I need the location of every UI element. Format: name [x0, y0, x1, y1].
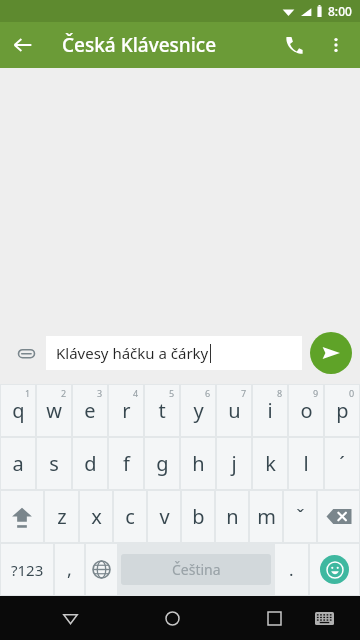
staticText: g	[156, 450, 169, 477]
staticText: ˇ	[296, 503, 305, 530]
button[interactable]: Recents	[252, 596, 296, 640]
button[interactable]: d	[73, 438, 107, 489]
staticText: 6	[205, 387, 211, 399]
staticText: z	[57, 503, 67, 530]
button[interactable]: ˇ	[284, 491, 316, 542]
staticText: e	[84, 397, 96, 424]
staticText: p	[336, 397, 349, 424]
button[interactable]: .	[275, 544, 308, 595]
button[interactable]: r	[109, 385, 143, 436]
button[interactable]: i	[253, 385, 287, 436]
button[interactable]: f	[109, 438, 143, 489]
button[interactable]: e	[73, 385, 107, 436]
staticText: 3	[97, 387, 103, 399]
button[interactable]: Call	[272, 23, 316, 67]
button[interactable]: z	[45, 491, 78, 542]
button[interactable]: Home	[150, 596, 194, 640]
staticText: 0	[349, 387, 355, 399]
button[interactable]: ?123	[1, 544, 53, 595]
button[interactable]: b	[182, 491, 214, 542]
button[interactable]: Klávesy háčku a čárky	[46, 336, 302, 370]
button[interactable]: Keyboard	[304, 598, 344, 638]
staticText: y	[193, 397, 204, 424]
button[interactable]: a	[1, 438, 35, 489]
staticText: a	[12, 450, 24, 477]
button[interactable]: t	[145, 385, 179, 436]
button[interactable]: p	[325, 385, 359, 436]
button[interactable]: o	[289, 385, 323, 436]
staticText: ´	[339, 450, 345, 477]
staticText: Klávesy háčku a čárky	[56, 343, 209, 363]
staticText: 4	[133, 387, 139, 399]
button[interactable]: u	[217, 385, 251, 436]
button[interactable]: Back	[48, 596, 92, 640]
staticText: j	[231, 450, 237, 477]
staticText: r	[122, 397, 131, 424]
button[interactable]: l	[289, 438, 323, 489]
staticText: f	[123, 450, 130, 477]
button[interactable]: y	[181, 385, 215, 436]
staticText: b	[192, 503, 205, 530]
staticText: 5	[169, 387, 175, 399]
staticText: Česká Klávesnice	[62, 32, 217, 58]
staticText: 8:00	[328, 3, 352, 19]
staticText: 2	[61, 387, 67, 399]
button[interactable]: ,	[55, 544, 84, 595]
button[interactable]: Shift	[1, 491, 43, 542]
staticText: k	[265, 450, 276, 477]
staticText: t	[158, 397, 166, 424]
button[interactable]: m	[250, 491, 282, 542]
button[interactable]: Back	[0, 22, 46, 68]
staticText: Čeština	[172, 560, 221, 579]
staticText: o	[300, 397, 313, 424]
staticText: l	[303, 450, 309, 477]
button[interactable]: Emoji	[310, 544, 359, 595]
button[interactable]: g	[145, 438, 179, 489]
button[interactable]: k	[253, 438, 287, 489]
staticText: 7	[241, 387, 247, 399]
staticText: u	[228, 397, 241, 424]
button[interactable]: Attach	[6, 333, 46, 373]
button[interactable]: v	[148, 491, 180, 542]
button[interactable]: Čeština	[121, 554, 271, 585]
button[interactable]: Send	[310, 332, 352, 374]
staticText: 9	[313, 387, 319, 399]
staticText: q	[12, 397, 25, 424]
button[interactable]: w	[37, 385, 71, 436]
button[interactable]: s	[37, 438, 71, 489]
staticText: 1	[25, 387, 31, 399]
button[interactable]: More options	[316, 25, 356, 65]
staticText: s	[49, 450, 59, 477]
staticText: w	[46, 397, 62, 424]
staticText: h	[192, 450, 205, 477]
button[interactable]: Backspace	[318, 491, 359, 542]
button[interactable]: Change language	[86, 544, 117, 595]
staticText: x	[91, 503, 102, 530]
button[interactable]: ´	[325, 438, 359, 489]
staticText: v	[159, 503, 170, 530]
staticText: ,	[67, 557, 72, 582]
staticText: ?123	[11, 560, 44, 580]
button[interactable]: c	[114, 491, 146, 542]
staticText: .	[289, 558, 294, 581]
button[interactable]: x	[80, 491, 112, 542]
button[interactable]: h	[181, 438, 215, 489]
staticText: m	[257, 503, 276, 530]
staticText: 8	[277, 387, 283, 399]
button[interactable]: n	[216, 491, 248, 542]
button[interactable]: j	[217, 438, 251, 489]
button[interactable]: q	[1, 385, 35, 436]
staticText: i	[267, 397, 273, 424]
staticText: d	[84, 450, 97, 477]
staticText: c	[125, 503, 135, 530]
staticText: n	[226, 503, 239, 530]
